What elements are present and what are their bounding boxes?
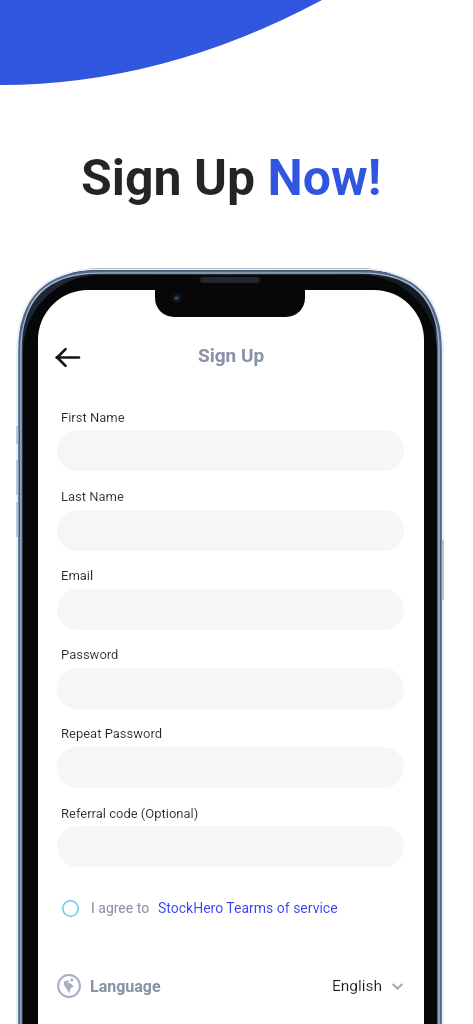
staticText: English <box>332 977 383 995</box>
staticText: Repeat Password <box>61 726 163 741</box>
staticText: Sign Up <box>198 344 265 366</box>
staticText: Email <box>61 568 94 583</box>
staticText: I agree to <box>91 900 150 916</box>
staticText: StockHero Tearms of service <box>158 900 338 916</box>
staticText: Sign Up Now! <box>81 149 382 208</box>
staticText: Password <box>61 647 119 662</box>
staticText: Last Name <box>61 489 124 504</box>
staticText: First Name <box>61 410 125 425</box>
button[interactable]: Language <box>57 974 161 998</box>
button[interactable]: Back <box>49 339 86 376</box>
button[interactable]: I agree to <box>62 891 338 925</box>
staticText: Language <box>90 977 161 996</box>
button[interactable]: English <box>332 977 405 995</box>
staticText: Referral code (Optional) <box>61 806 199 821</box>
